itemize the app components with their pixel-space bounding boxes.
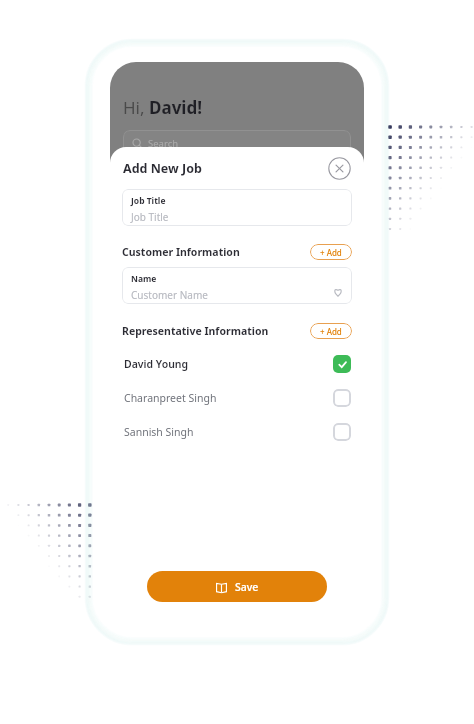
- button[interactable]: Name: [122, 267, 352, 304]
- staticText: Sannish Singh: [124, 425, 194, 439]
- staticText: David!: [149, 96, 202, 119]
- staticText: Representative Information: [122, 324, 269, 338]
- button[interactable]: Add New Job: [122, 157, 203, 180]
- staticText: Customer Name: [131, 288, 208, 302]
- staticText: Customer Information: [122, 245, 240, 259]
- staticText: Name: [131, 273, 157, 285]
- button[interactable]: + Add: [310, 323, 352, 339]
- button[interactable]: Charanpreet Singh: [110, 381, 364, 415]
- staticText: David Young: [124, 357, 189, 371]
- staticText: + Add: [320, 326, 342, 337]
- button[interactable]: Sannish Singh: [110, 415, 364, 449]
- button[interactable]: David Young: [110, 347, 364, 381]
- staticText: Job Title: [131, 210, 169, 224]
- button[interactable]: + Add: [310, 244, 352, 260]
- staticText: Search: [148, 137, 179, 150]
- button[interactable]: Job Title: [122, 189, 352, 226]
- staticText: Save: [235, 580, 259, 594]
- staticText: Hi,: [123, 96, 149, 119]
- button[interactable]: Close: [328, 157, 351, 180]
- staticText: Charanpreet Singh: [124, 391, 217, 405]
- button[interactable]: Search: [123, 130, 351, 156]
- staticText: Job Title: [131, 195, 166, 207]
- staticText: Add New Job: [123, 160, 202, 177]
- button[interactable]: Save: [147, 571, 327, 602]
- staticText: + Add: [320, 247, 342, 258]
